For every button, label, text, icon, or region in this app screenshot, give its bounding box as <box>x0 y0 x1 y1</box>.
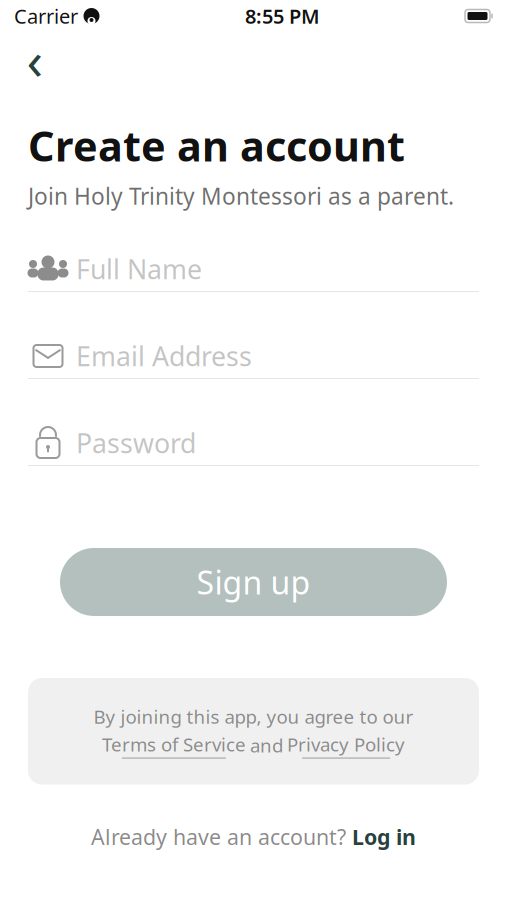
staticText: Create an account <box>28 118 405 173</box>
staticText: Already have an account? <box>91 823 346 851</box>
staticText: Email Address <box>76 338 252 374</box>
button[interactable]: Email Address <box>28 334 479 379</box>
staticText: ‹ <box>26 24 43 94</box>
button[interactable]: Password <box>28 421 479 466</box>
staticText: Privacy Policy <box>287 732 405 757</box>
button[interactable]: Sign up <box>60 548 447 616</box>
staticText: Sign up <box>196 561 310 603</box>
staticText: Full Name <box>76 251 202 287</box>
staticText: By joining this app, you agree to our <box>93 704 413 729</box>
staticText: Password <box>76 425 196 461</box>
button[interactable]: Back <box>12 38 58 80</box>
button[interactable]: Terms of Service <box>102 732 246 759</box>
button[interactable]: Already have an account? <box>0 815 507 859</box>
staticText: 8:55 PM <box>245 3 320 29</box>
button[interactable]: Privacy Policy <box>287 732 405 759</box>
staticText: Log in <box>352 823 416 851</box>
staticText: and <box>250 733 283 758</box>
button[interactable]: Full Name <box>28 247 479 292</box>
staticText: Join Holy Trinity Montessori as a parent… <box>28 181 454 211</box>
staticText: Carrier <box>14 3 78 29</box>
staticText: Terms of Service <box>102 732 246 757</box>
